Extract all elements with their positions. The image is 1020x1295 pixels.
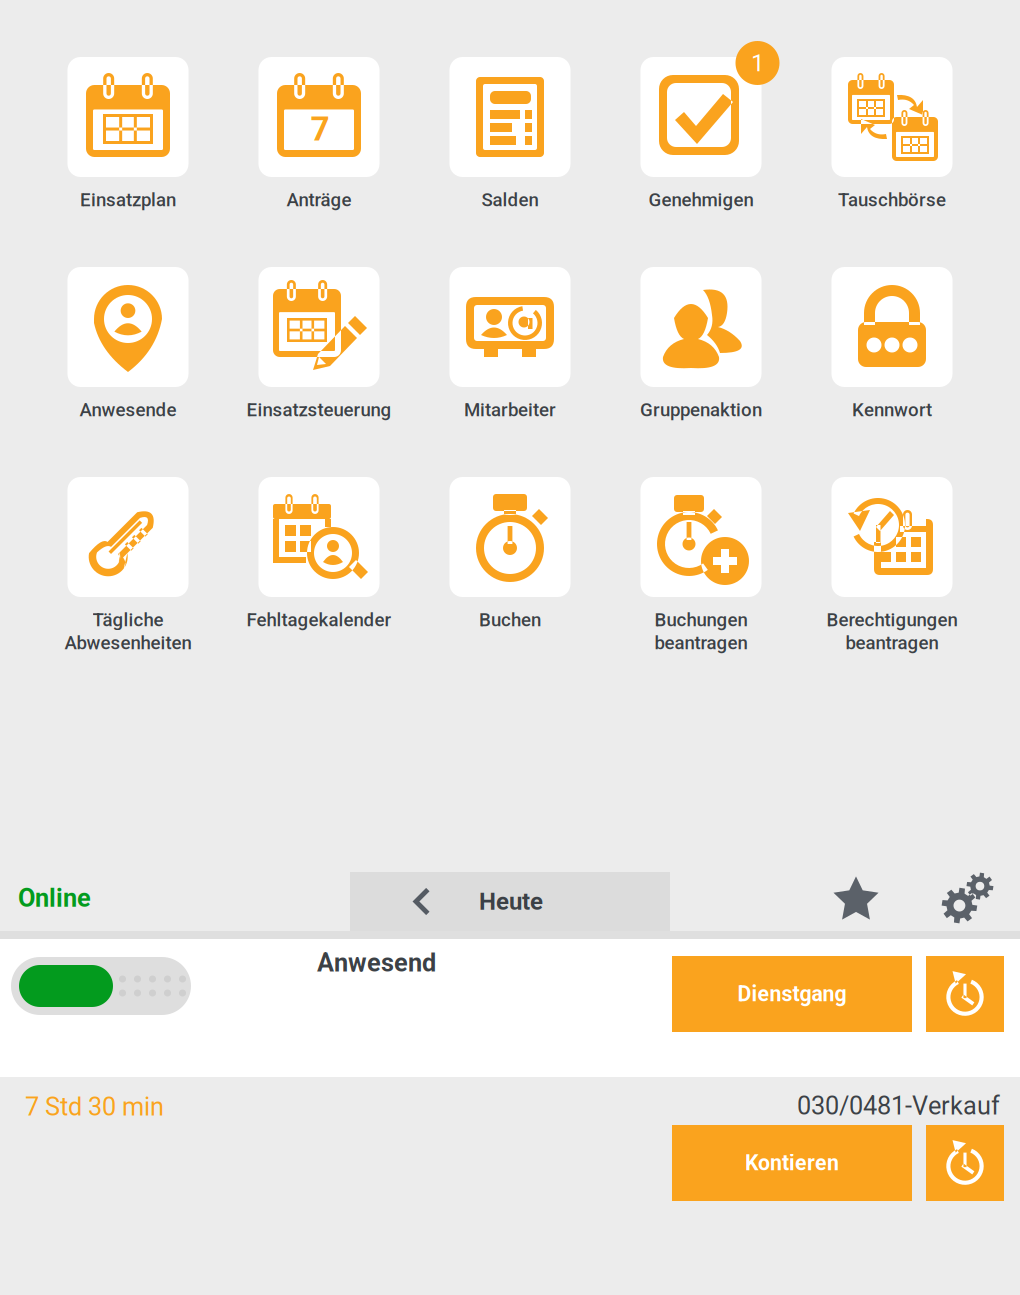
button[interactable]: 1 (605, 57, 796, 241)
button[interactable]: Einsatzsteuerung (223, 267, 414, 451)
staticText: Heute (479, 887, 543, 915)
button[interactable]: Heute (350, 865, 670, 931)
button[interactable]: Online (0, 865, 350, 931)
staticText: Tägliche (92, 609, 163, 631)
button[interactable]: Mitarbeiter (414, 267, 605, 451)
button[interactable]: Kontieren (672, 1125, 912, 1201)
button[interactable]: Buchungen (605, 477, 796, 661)
staticText: 030/0481-Verkauf (797, 1091, 1000, 1121)
button[interactable]: Berechtigungen (796, 477, 987, 661)
staticText: Abwesenheiten (64, 632, 191, 654)
button[interactable]: Fehltagekalender (223, 477, 414, 661)
staticText: Einsatzsteuerung (246, 399, 391, 421)
staticText: Gruppenaktion (640, 399, 762, 421)
staticText: beantragen (845, 632, 938, 654)
staticText: beantragen (654, 632, 747, 654)
button[interactable]: Einsatzplan (32, 57, 223, 241)
staticText: Dienstgang (737, 981, 846, 1006)
staticText: Anwesend (317, 948, 436, 978)
button[interactable]: Tauschbörse (796, 57, 987, 241)
staticText: Berechtigungen (826, 609, 957, 631)
button[interactable]: Buchen (414, 477, 605, 661)
staticText: Anwesende (79, 399, 176, 421)
button[interactable]: Dienstgang (672, 956, 912, 1032)
button[interactable]: 7 (223, 57, 414, 241)
staticText: Mitarbeiter (464, 399, 556, 421)
staticText: Tauschbörse (838, 189, 946, 211)
staticText: Anträge (286, 189, 351, 211)
staticText: Genehmigen (648, 189, 753, 211)
button[interactable]: Kennwort (796, 267, 987, 451)
staticText: 7 Std 30 min (25, 1092, 164, 1122)
staticText: Fehltagekalender (246, 609, 391, 631)
button[interactable]: Favoriten (832, 874, 880, 922)
staticText: 1 (751, 49, 764, 77)
staticText: Online (18, 883, 91, 913)
button[interactable]: Salden (414, 57, 605, 241)
button[interactable]: Einstellungen (940, 871, 994, 925)
button[interactable]: Tägliche (32, 477, 223, 661)
button[interactable]: Gruppenaktion (605, 267, 796, 451)
button[interactable]: Verlauf (926, 956, 1004, 1032)
staticText: Buchen (479, 609, 541, 631)
staticText: 7 (310, 109, 329, 149)
button[interactable]: Anwesende (32, 267, 223, 451)
staticText: Kennwort (852, 399, 932, 421)
staticText: Salden (481, 189, 538, 211)
button[interactable]: Verlauf (926, 1125, 1004, 1201)
staticText: Einsatzplan (80, 189, 176, 211)
staticText: Kontieren (745, 1150, 839, 1175)
staticText: Buchungen (654, 609, 747, 631)
